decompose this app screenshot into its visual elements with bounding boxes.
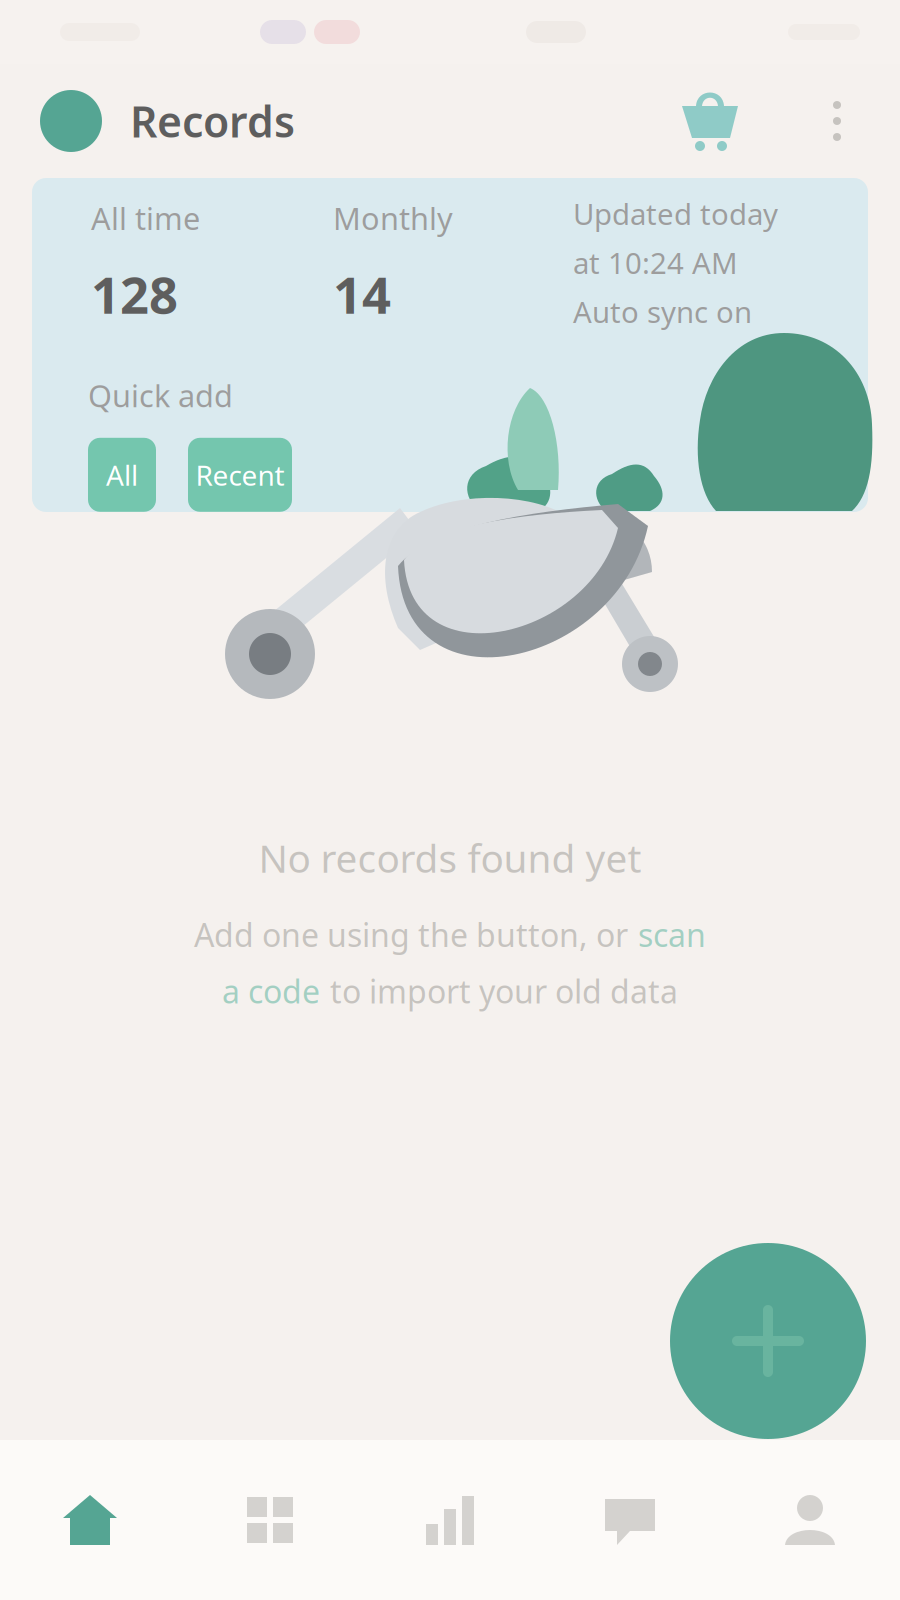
staticText: Recent <box>195 456 284 493</box>
button[interactable]: Profile <box>720 1440 900 1600</box>
staticText: 128 <box>91 260 178 328</box>
button[interactable]: Profile <box>40 90 102 152</box>
staticText: Updated today <box>573 194 778 233</box>
button[interactable]: Recent <box>188 438 292 512</box>
staticText: to import your old data <box>330 970 678 1012</box>
staticText: Quick add <box>88 375 233 416</box>
button[interactable]: Browse <box>180 1440 360 1600</box>
button[interactable]: Home <box>0 1440 180 1600</box>
staticText: scan <box>638 913 706 956</box>
button[interactable]: Add record <box>670 1243 866 1439</box>
staticText: Records <box>130 93 295 149</box>
staticText: 14 <box>333 260 391 328</box>
staticText: Monthly <box>333 198 453 238</box>
button[interactable]: Messages <box>540 1440 720 1600</box>
button[interactable]: More options <box>816 94 858 148</box>
staticText: Auto sync on <box>573 292 752 331</box>
staticText: Add one using the button, or <box>194 913 628 956</box>
staticText: All <box>106 456 138 493</box>
staticText: No records found yet <box>258 832 641 883</box>
staticText: All time <box>91 198 200 238</box>
staticText: a code <box>222 970 320 1012</box>
button[interactable]: a code <box>222 970 320 1012</box>
button[interactable]: All <box>88 438 156 512</box>
staticText: at 10:24 AM <box>573 243 738 282</box>
button[interactable]: Stats <box>360 1440 540 1600</box>
button[interactable]: scan <box>638 913 706 956</box>
button[interactable]: Cart <box>674 86 746 156</box>
